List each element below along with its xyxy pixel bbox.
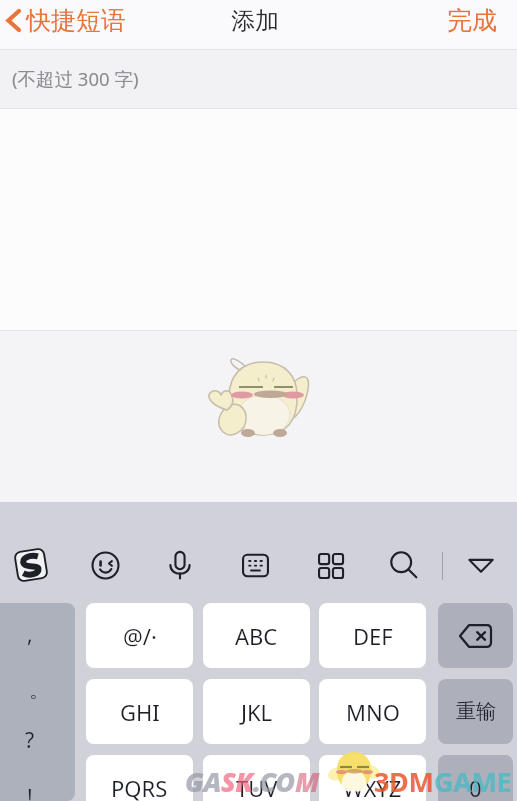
button[interactable]: PQRS — [86, 755, 193, 801]
button[interactable]: Delete — [438, 603, 513, 668]
button[interactable] — [438, 679, 513, 744]
staticText: GHI — [120, 697, 160, 727]
staticText: MNO — [346, 697, 400, 727]
button[interactable]: MNO — [319, 679, 426, 744]
staticText: 。 — [29, 677, 50, 703]
button[interactable]: Apps — [300, 535, 360, 595]
button[interactable]: Hide keyboard — [451, 535, 511, 595]
button[interactable]: GHI — [86, 679, 193, 744]
button[interactable]: TUV — [203, 755, 310, 801]
button[interactable]: DEF — [319, 603, 426, 668]
staticText: GA — [185, 763, 221, 800]
staticText: ABC — [235, 621, 278, 651]
staticText: GAME — [434, 763, 512, 800]
staticText: 0 — [469, 773, 482, 801]
staticText: , — [27, 620, 33, 648]
staticText: @/· — [123, 621, 157, 651]
button[interactable]: Emoji — [75, 535, 135, 595]
staticText: 3DM — [374, 763, 434, 800]
staticText: (不超过 300 字) — [12, 66, 139, 91]
button[interactable]: WXYZ — [319, 755, 426, 801]
button[interactable]: Sogou input — [1, 535, 61, 595]
button[interactable]: @/· — [86, 603, 193, 668]
button[interactable]: Keyboard layout — [225, 535, 285, 595]
button[interactable]: JKL — [203, 679, 310, 744]
staticText: 快捷短语 — [26, 5, 126, 36]
staticText: ! — [27, 783, 33, 801]
button[interactable]: 完成 — [433, 0, 517, 44]
button[interactable]: ABC — [203, 603, 310, 668]
staticText: JKL — [241, 697, 273, 727]
button[interactable]: Search — [374, 535, 434, 595]
staticText: ? — [25, 726, 35, 754]
staticText: 重输 — [456, 699, 496, 724]
staticText: .CO — [253, 763, 295, 800]
staticText: DEF — [353, 621, 393, 651]
staticText: 添加 — [231, 6, 279, 36]
button[interactable] — [438, 755, 513, 801]
button[interactable]: 快捷短语 — [0, 0, 138, 42]
staticText: M — [295, 763, 319, 800]
staticText: 完成 — [447, 5, 497, 36]
staticText: TUV — [236, 773, 278, 801]
staticText: PQRS — [111, 773, 168, 801]
staticText: WXYZ — [343, 773, 402, 801]
button[interactable]: Voice input — [150, 535, 210, 595]
staticText: SK — [221, 763, 253, 800]
button[interactable]: Punctuation — [0, 603, 75, 801]
